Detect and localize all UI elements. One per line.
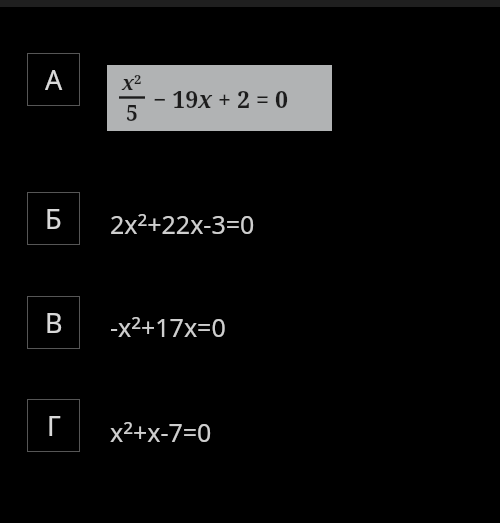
staticText: x2+x-7=0 (110, 415, 212, 449)
button[interactable]: Б (27, 192, 80, 245)
staticText: 2x2+22x-3=0 (110, 207, 255, 241)
staticText: 5 (126, 99, 138, 128)
button[interactable]: x2 (107, 65, 332, 131)
button[interactable]: -x2+17x=0 (110, 310, 226, 344)
staticText: -x2+17x=0 (110, 310, 226, 344)
button[interactable]: В (27, 296, 80, 349)
staticText: x2 (122, 69, 142, 96)
staticText: А (45, 61, 63, 98)
other: Option V (27, 296, 80, 349)
button[interactable]: x2+x-7=0 (110, 415, 212, 449)
staticText: Б (45, 200, 62, 237)
other: Option G (27, 399, 80, 452)
button[interactable]: Г (27, 399, 80, 452)
other: Option A (27, 53, 80, 106)
staticText: − 19x + 2 = 0 (147, 83, 288, 114)
staticText: Г (47, 407, 61, 444)
button[interactable]: А (27, 53, 80, 106)
button[interactable]: 2x2+22x-3=0 (110, 207, 255, 241)
other: Option B (27, 192, 80, 245)
staticText: В (45, 304, 63, 341)
